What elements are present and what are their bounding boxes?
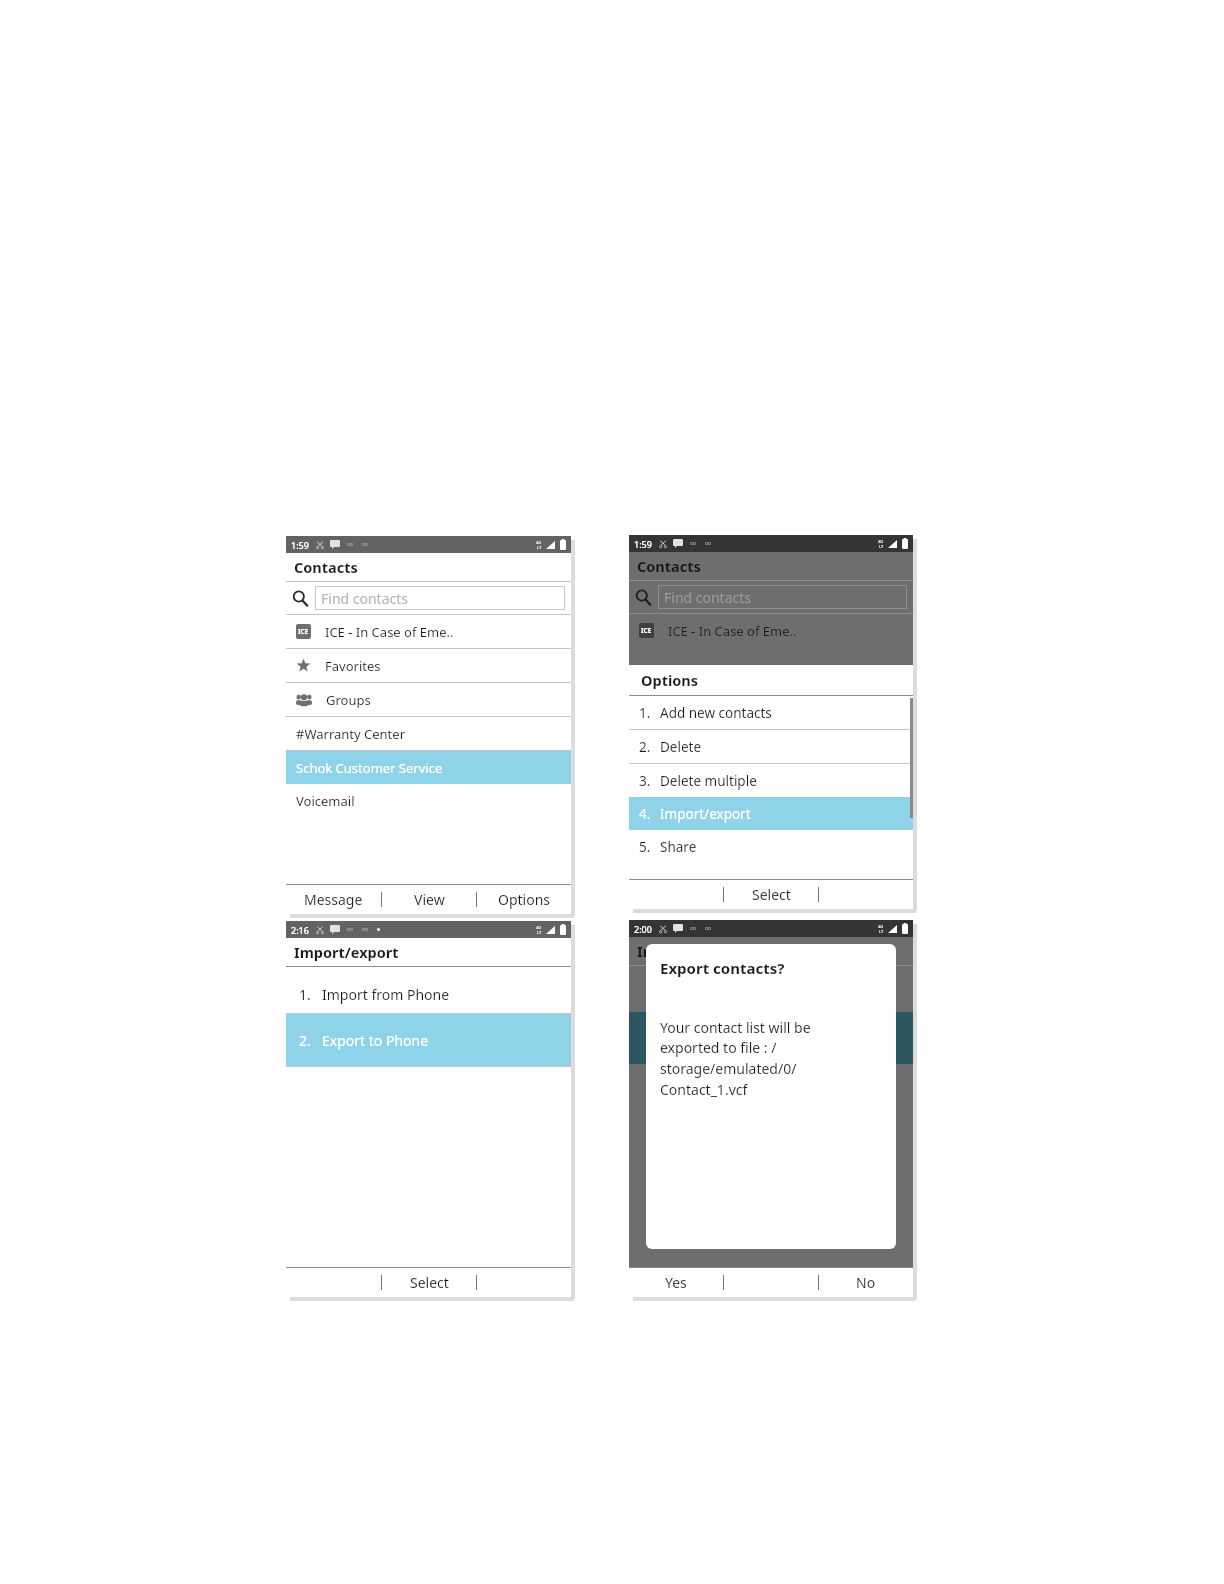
button[interactable]: Voicemail [286,784,571,817]
staticText: Contacts [294,557,358,577]
button[interactable]: Select [382,1268,476,1297]
staticText: 2:00 [634,923,652,935]
staticText: Share [660,838,697,856]
staticText: Delete multiple [660,772,757,790]
staticText: Import from Phone [322,985,450,1004]
staticText: 4G [536,540,542,545]
button[interactable]: ICE [286,615,571,648]
staticText: oo [347,541,354,548]
staticText: 1:59 [634,538,652,550]
button[interactable]: Select [724,880,818,909]
button[interactable]: 1. [286,975,571,1013]
staticText: Find contacts [321,589,409,608]
button[interactable]: 2. [286,1014,571,1066]
staticText: Import/export [637,941,742,961]
staticText: 1. [639,704,651,722]
staticText: oo [705,925,712,932]
staticText: oo [347,926,354,933]
button[interactable]: No [819,1268,913,1297]
staticText: Import/export [660,805,751,823]
staticText: oo [705,540,712,547]
button[interactable]: 2. [629,730,913,763]
staticText: Select [752,885,791,904]
staticText: LT [537,930,542,935]
staticText: View [414,890,445,909]
staticText: ICE - In Case of Eme.. [668,622,797,640]
staticText: Yes [665,1273,687,1292]
button[interactable]: Search [292,582,565,614]
staticText: Export to Phone [322,1031,429,1050]
button[interactable]: 3. [629,764,913,797]
button[interactable]: View [382,885,476,914]
staticText: LT [879,544,884,549]
staticText: LT [879,929,884,934]
staticText: Options [498,890,551,909]
button[interactable]: Favorites [286,649,571,682]
staticText: Select [410,1273,449,1292]
staticText: 4. [639,805,651,823]
staticText: 1:59 [291,539,309,551]
staticText: oo [362,926,369,933]
staticText: oo [362,541,369,548]
staticText: 2:16 [291,924,309,936]
staticText: Delete [660,738,702,756]
staticText: Favorites [325,657,381,675]
staticText: Groups [326,691,371,709]
button[interactable]: Groups [286,683,571,716]
button[interactable]: #Warranty Center [286,717,571,750]
other: Search [292,590,309,607]
staticText: ICE - In Case of Eme.. [325,623,454,641]
staticText: oo [690,540,697,547]
button[interactable]: Options [477,885,571,914]
staticText: Import/export [294,942,399,962]
staticText: Contacts [637,556,701,576]
staticText: 4G [878,924,884,929]
staticText: 2. [299,1031,311,1050]
button[interactable]: Schok Customer Service [286,751,571,784]
staticText: 4G [878,539,884,544]
button[interactable]: Message [286,885,381,914]
staticText: Options [641,670,699,690]
staticText: LT [537,545,542,550]
staticText: Voicemail [296,792,355,810]
staticText: 4G [536,925,542,930]
button[interactable]: 1. [629,696,913,729]
button[interactable]: 4. [629,797,913,830]
staticText: 5. [639,838,651,856]
button[interactable]: 5. [629,830,913,863]
staticText: 3. [639,772,651,790]
staticText: oo [690,925,697,932]
staticText: #Warranty Center [296,725,406,743]
staticText: 2. [639,738,651,756]
staticText: Find contacts [664,588,752,607]
staticText: 1. [299,985,311,1004]
staticText: Message [304,890,363,909]
staticText: Export contacts? [660,958,785,978]
staticText: ICE [641,626,652,635]
button[interactable]: Yes [629,1268,723,1297]
staticText: Add new contacts [660,704,772,722]
staticText: No [856,1273,876,1292]
staticText: Your contact list will be exported to fi… [660,1018,811,1100]
staticText: ICE [298,627,309,636]
staticText: Schok Customer Service [296,759,443,777]
